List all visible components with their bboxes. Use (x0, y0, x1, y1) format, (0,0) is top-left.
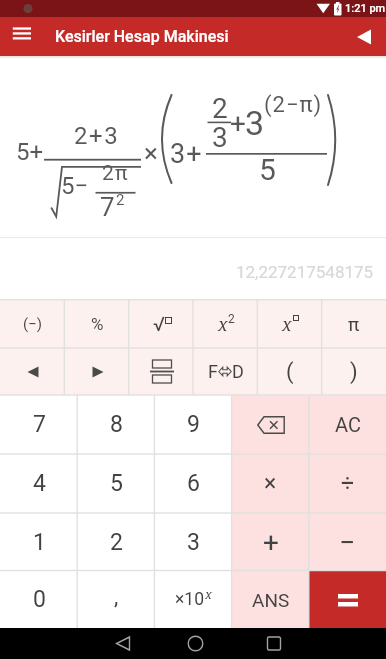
staticText: ÷ (341, 470, 355, 497)
staticText: 4 (33, 470, 46, 497)
button[interactable]: ) (322, 348, 386, 395)
staticText: , (114, 584, 119, 610)
staticText: ( (286, 359, 294, 385)
staticText: 1 (33, 529, 46, 556)
button[interactable]: ÷ (309, 454, 386, 513)
staticText: % (91, 314, 104, 334)
staticText: + (263, 526, 279, 559)
button[interactable] (65, 348, 130, 395)
button[interactable]: 9 (155, 395, 232, 454)
button[interactable]: 1 (0, 513, 78, 571)
staticText: ) (350, 359, 358, 385)
staticText: 8 (110, 411, 123, 438)
button[interactable]: x (258, 299, 322, 348)
staticText: 7 (33, 411, 46, 438)
staticText: 2 (212, 92, 228, 125)
button[interactable]: F (194, 348, 258, 395)
staticText: − (339, 526, 356, 559)
button[interactable]: (−) (0, 299, 65, 348)
button[interactable]: ANS (232, 571, 309, 628)
staticText: 5 (110, 470, 123, 497)
button[interactable]: π (322, 299, 386, 348)
button[interactable] (309, 571, 386, 628)
staticText: π (348, 313, 360, 335)
button[interactable] (259, 629, 289, 659)
button[interactable]: 7 (0, 395, 78, 454)
button[interactable]: 3 (155, 513, 232, 571)
staticText: √ (153, 312, 165, 335)
staticText: 3 (212, 121, 228, 154)
staticText: 5− (61, 172, 89, 200)
staticText: 9 (187, 411, 200, 438)
staticText: 12,227217548175 (236, 262, 374, 282)
staticText: x (282, 312, 292, 336)
button[interactable]: + (232, 513, 309, 571)
button[interactable]: − (309, 513, 386, 571)
staticText: 2 (110, 529, 123, 556)
button[interactable] (108, 629, 138, 659)
staticText: F (208, 361, 218, 382)
button[interactable]: 6 (155, 454, 232, 513)
staticText: x (218, 312, 228, 336)
staticText: (−) (23, 315, 42, 333)
button[interactable] (0, 348, 65, 395)
button[interactable]: √ (130, 299, 194, 348)
button[interactable]: ×10 (155, 571, 232, 628)
button[interactable]: ( (258, 348, 322, 395)
staticText: 0 (33, 586, 46, 613)
staticText: 2π (102, 161, 129, 186)
staticText: 7 (100, 192, 115, 222)
staticText: 3 (187, 529, 200, 556)
staticText: ×10 (175, 589, 205, 610)
button[interactable] (4, 17, 40, 53)
staticText: D (232, 361, 244, 382)
staticText: Kesirler Hesap Makinesi (55, 27, 229, 46)
staticText: x (205, 586, 212, 603)
button[interactable]: 5 (78, 454, 155, 513)
button[interactable] (346, 19, 382, 55)
staticText: 2+3 (74, 122, 120, 150)
button[interactable]: 8 (78, 395, 155, 454)
button[interactable] (130, 348, 194, 395)
button[interactable]: 4 (0, 454, 78, 513)
staticText: 5+ (16, 138, 44, 166)
staticText: 2 (228, 312, 235, 326)
button[interactable] (181, 629, 211, 659)
staticText: × (144, 138, 158, 168)
button[interactable]: × (232, 454, 309, 513)
staticText: 5 (259, 152, 276, 187)
staticText: 2 (116, 191, 125, 209)
button[interactable]: 0 (0, 571, 78, 628)
staticText: 1:21 pm (345, 2, 386, 15)
staticText: 6 (187, 470, 200, 497)
staticText: AC (335, 413, 361, 436)
button[interactable]: % (65, 299, 130, 348)
staticText: 3+ (170, 138, 203, 170)
staticText: 3 (245, 103, 265, 143)
button[interactable] (232, 395, 309, 454)
button[interactable]: AC (309, 395, 386, 454)
staticText: × (264, 470, 277, 497)
button[interactable]: , (78, 571, 155, 628)
staticText: + (230, 107, 246, 140)
button[interactable]: 2 (78, 513, 155, 571)
button[interactable]: x (194, 299, 258, 348)
staticText: ANS (252, 589, 290, 611)
staticText: (2−π) (264, 92, 323, 118)
